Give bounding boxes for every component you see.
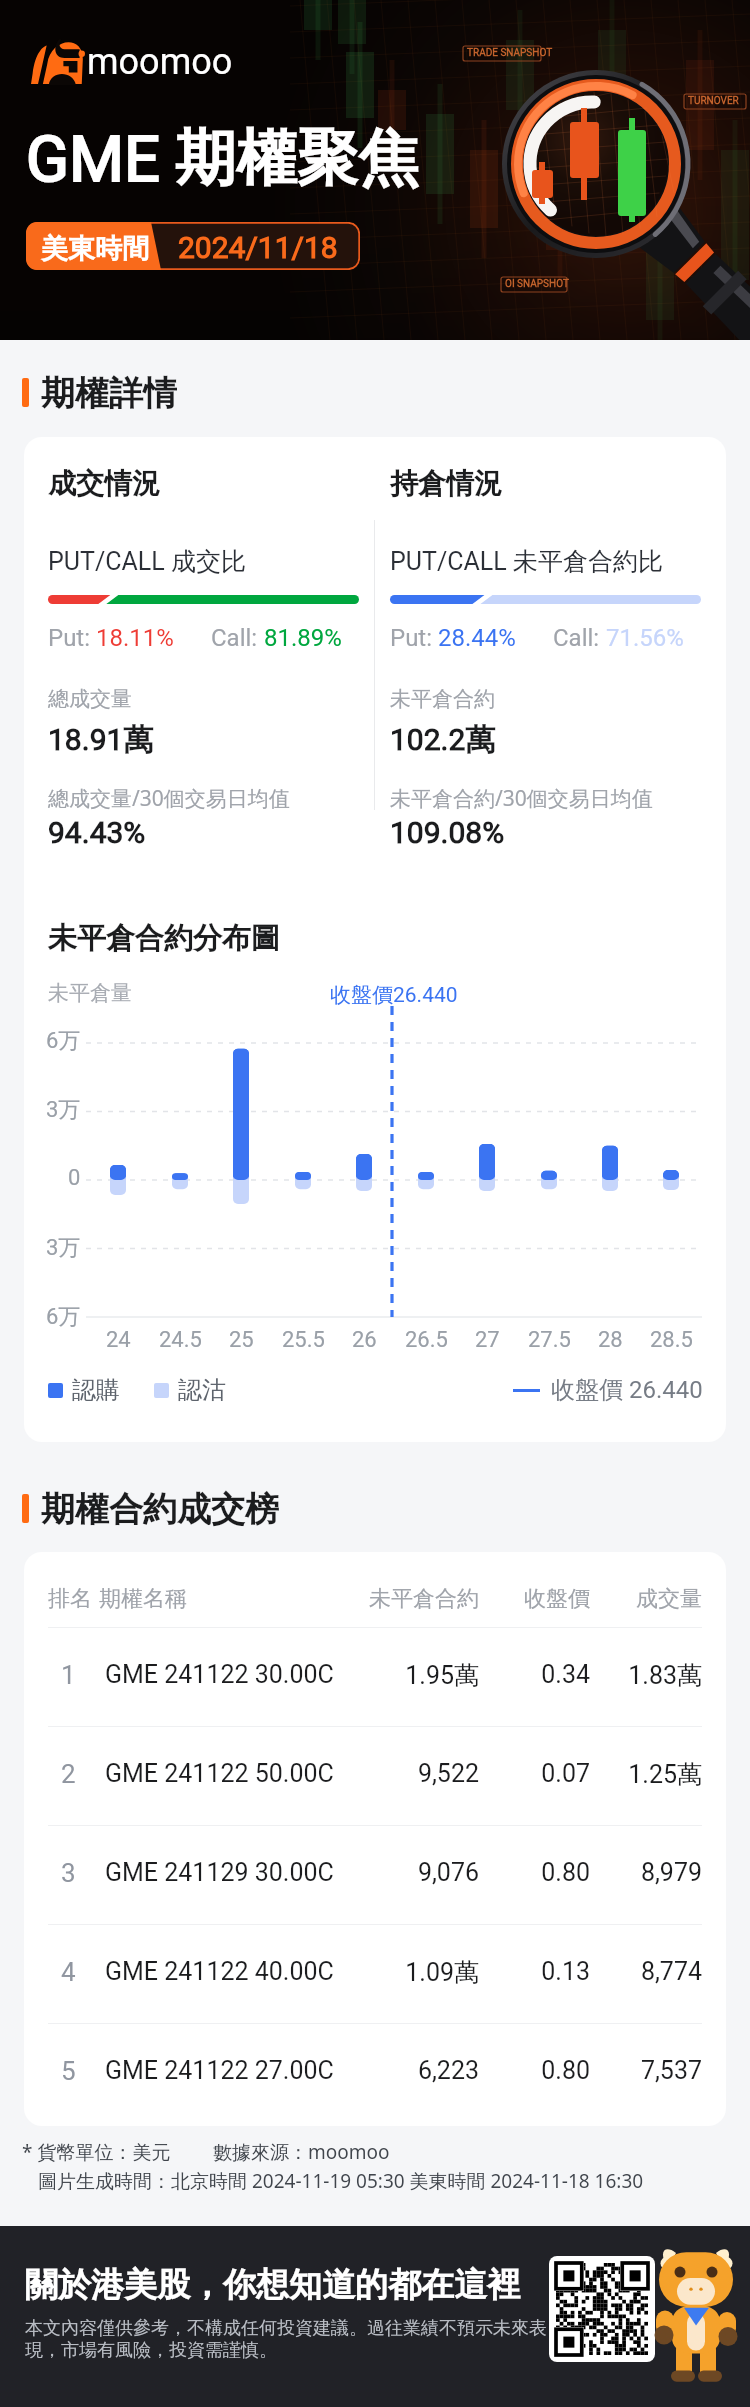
staticText: GME 241122 30.00C: [105, 1660, 334, 1689]
other: moomoo logo: [31, 32, 85, 84]
staticText: TRADE SNAPSHOT: [467, 47, 553, 59]
staticText: 成交情況: [48, 466, 160, 501]
staticText: 1.83萬: [590, 1660, 702, 1691]
staticText: 0.34: [479, 1660, 590, 1689]
staticText: 未平倉合約/30個交易日均值: [390, 784, 653, 813]
staticText: 持倉情況: [390, 466, 502, 501]
button[interactable]: 4: [24, 1925, 726, 2023]
staticText: TURNOVER: [688, 95, 739, 107]
staticText: moomoo: [87, 41, 233, 83]
staticText: 0.07: [479, 1759, 590, 1788]
button[interactable]: 2: [24, 1727, 726, 1825]
staticText: 5: [61, 2056, 76, 2086]
staticText: 102.2萬: [390, 721, 496, 759]
staticText: 未平倉合約: [390, 686, 495, 712]
staticText: 28.44%: [438, 624, 516, 652]
staticText: 收盤價 26.440: [551, 1375, 703, 1405]
staticText: 成交量: [590, 1585, 702, 1613]
staticText: 美東時間: [41, 232, 149, 266]
staticText: 109.08%: [390, 815, 505, 850]
staticText: 26.5: [405, 1327, 448, 1353]
staticText: 3万: [46, 1234, 81, 1262]
staticText: 排名: [48, 1585, 92, 1613]
staticText: 8,774: [590, 1957, 702, 1986]
staticText: 6,223: [329, 2056, 479, 2085]
button[interactable]: 美東時間: [26, 222, 360, 270]
staticText: 24.5: [159, 1327, 202, 1353]
staticText: 25: [229, 1327, 254, 1353]
staticText: 4: [61, 1957, 76, 1987]
staticText: 關於港美股，你想知道的都在這裡: [25, 2264, 520, 2306]
staticText: 27.5: [528, 1327, 571, 1353]
staticText: 期權名稱: [99, 1585, 187, 1613]
staticText: 0: [68, 1165, 81, 1191]
staticText: 25.5: [282, 1327, 325, 1353]
staticText: 28: [598, 1327, 623, 1353]
staticText: 7,537: [590, 2056, 702, 2085]
button[interactable]: 3: [24, 1826, 726, 1924]
staticText: 期權詳情: [41, 372, 177, 412]
staticText: 27: [475, 1327, 500, 1353]
staticText: 認購: [72, 1375, 120, 1405]
staticText: GME 241122 27.00C: [105, 2056, 334, 2085]
staticText: GME 241122 50.00C: [105, 1759, 334, 1788]
staticText: 6万: [46, 1027, 81, 1055]
staticText: 認沽: [178, 1375, 226, 1405]
staticText: 本文內容僅供參考，不構成任何投資建議。過往業績不預示未來表 現，市場有風險，投資…: [25, 2317, 547, 2361]
staticText: 1.25萬: [590, 1759, 702, 1790]
button[interactable]: QR code: [549, 2256, 655, 2362]
staticText: 期權聚焦: [175, 120, 419, 197]
staticText: 24: [106, 1327, 131, 1353]
button[interactable]: 1: [24, 1628, 726, 1726]
staticText: OI SNAPSHOT: [505, 278, 569, 290]
staticText: 81.89%: [264, 624, 342, 652]
staticText: Put:: [48, 624, 96, 652]
staticText: 18.11%: [96, 624, 174, 652]
staticText: 0.13: [479, 1957, 590, 1986]
staticText: 總成交量: [48, 686, 132, 712]
staticText: 71.56%: [606, 624, 684, 652]
staticText: 0.80: [479, 2056, 590, 2085]
staticText: 未平倉量: [48, 980, 132, 1006]
staticText: 26: [352, 1327, 377, 1353]
staticText: 總成交量/30個交易日均值: [48, 784, 290, 813]
staticText: 期權合約成交榜: [41, 1488, 279, 1528]
staticText: 未平倉合約: [329, 1585, 479, 1613]
staticText: 收盤價: [479, 1585, 590, 1613]
staticText: Call:: [211, 624, 264, 652]
staticText: 2024/11/18: [178, 230, 338, 265]
staticText: Put:: [390, 624, 438, 652]
staticText: GME 241129 30.00C: [105, 1858, 334, 1887]
staticText: 6万: [46, 1303, 81, 1331]
staticText: 0.80: [479, 1858, 590, 1887]
staticText: 數據來源：moomoo: [213, 2139, 390, 2165]
staticText: 18.91萬: [48, 721, 154, 759]
staticText: 9,076: [329, 1858, 479, 1887]
staticText: 3: [61, 1858, 76, 1888]
staticText: 圖片生成時間：北京時間 2024-11-19 05:30 美東時間 2024-1…: [38, 2168, 644, 2194]
staticText: 8,979: [590, 1858, 702, 1887]
staticText: 未平倉合約分布圖: [48, 920, 280, 957]
button[interactable]: 5: [24, 2024, 726, 2122]
staticText: 28.5: [650, 1327, 693, 1353]
staticText: GME: [26, 123, 160, 197]
staticText: 1.09萬: [329, 1957, 479, 1988]
staticText: 94.43%: [48, 815, 146, 850]
staticText: GME 241122 40.00C: [105, 1957, 334, 1986]
staticText: 1.95萬: [329, 1660, 479, 1691]
staticText: 收盤價26.440: [330, 982, 458, 1008]
staticText: PUT/CALL 成交比: [48, 546, 246, 577]
staticText: 9,522: [329, 1759, 479, 1788]
staticText: PUT/CALL 未平倉合約比: [390, 546, 663, 577]
staticText: 2: [61, 1759, 76, 1789]
staticText: * 貨幣單位：美元: [22, 2139, 171, 2165]
staticText: Call:: [553, 624, 606, 652]
staticText: 3万: [46, 1096, 81, 1124]
staticText: 1: [61, 1660, 76, 1690]
